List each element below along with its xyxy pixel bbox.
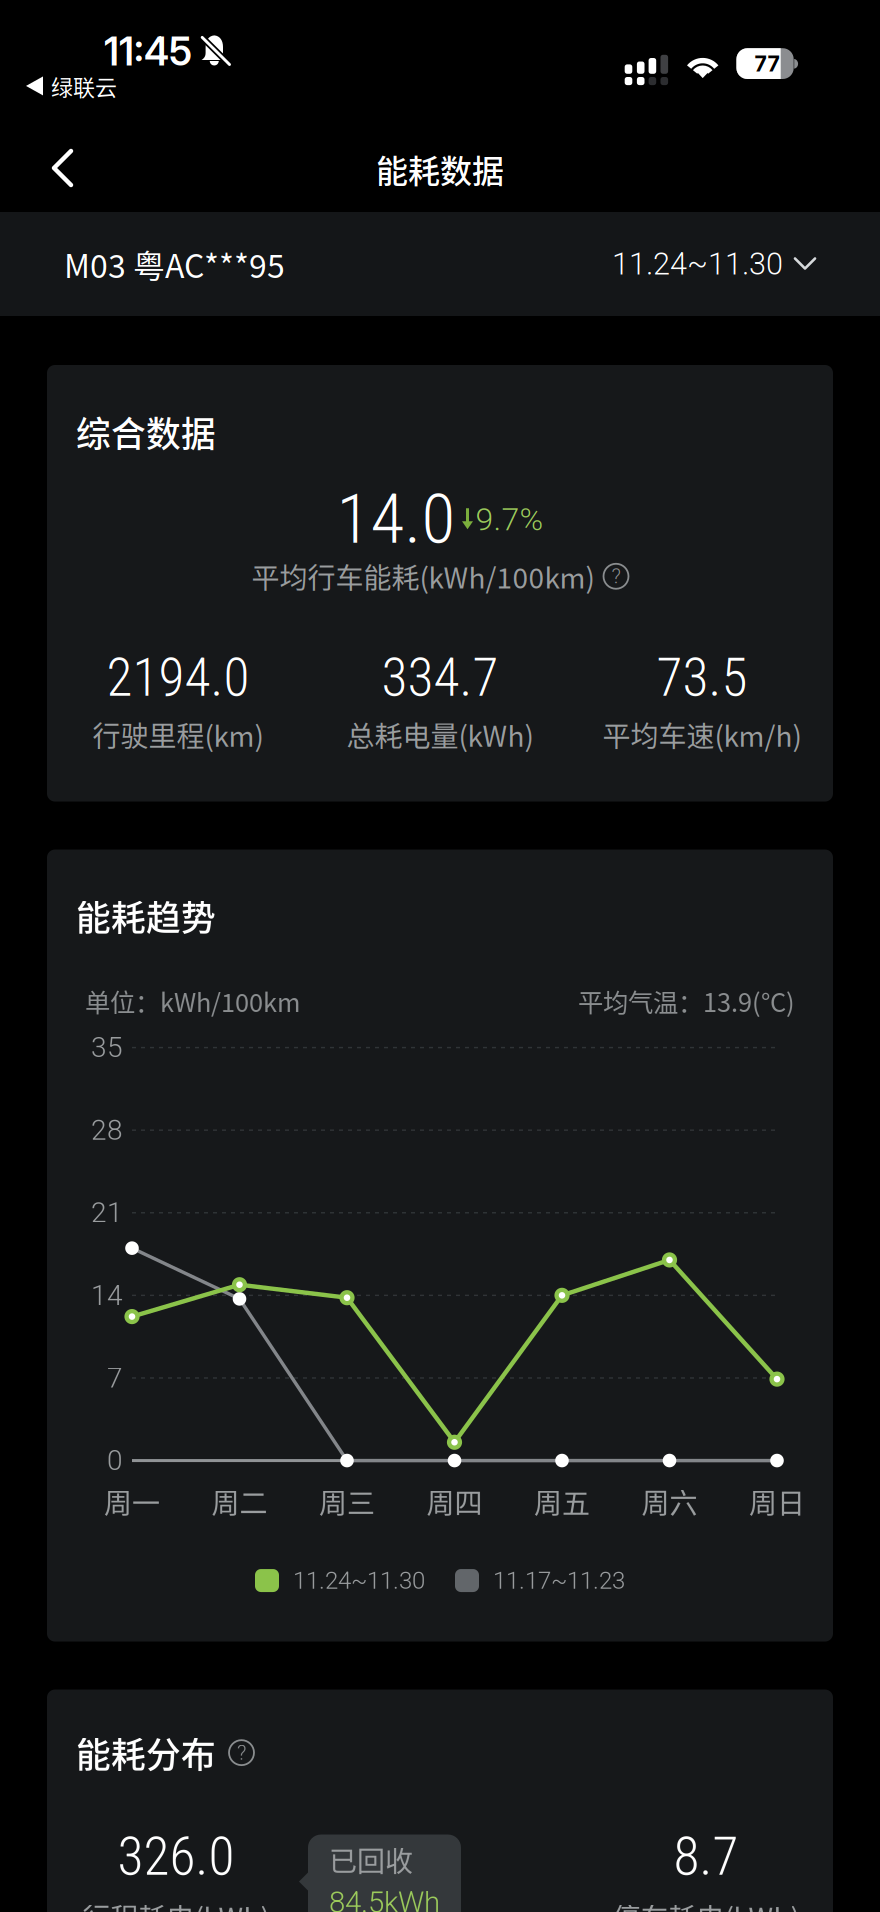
staticText: 平均车速(km/h) bbox=[602, 714, 801, 755]
staticText: 周日 bbox=[749, 1481, 805, 1522]
staticText: 11:45 bbox=[104, 28, 192, 75]
staticText: 行程耗电(kWh) bbox=[82, 1896, 269, 1912]
staticText: 周五 bbox=[534, 1481, 590, 1522]
staticText: 2194.0 bbox=[106, 646, 249, 709]
staticText: 8.7 bbox=[673, 1825, 738, 1888]
staticText: 11.24~11.30 bbox=[293, 1566, 425, 1595]
staticText: 能耗趋势 bbox=[76, 890, 216, 941]
staticText: 平均气温：13.9(°C) bbox=[578, 982, 795, 1019]
staticText: 334.7 bbox=[381, 646, 498, 709]
staticText: 7 bbox=[107, 1361, 123, 1394]
staticText: 9.7% bbox=[475, 500, 543, 538]
staticText: 单位：kWh/100km bbox=[85, 982, 300, 1019]
staticText: 77 bbox=[754, 51, 779, 77]
staticText: 73.5 bbox=[656, 646, 747, 709]
staticText: 周二 bbox=[211, 1481, 267, 1522]
staticText: 326.0 bbox=[117, 1825, 234, 1888]
staticText: 周六 bbox=[641, 1481, 697, 1522]
staticText: M03 粤AC***95 bbox=[64, 241, 285, 287]
staticText: 14 bbox=[91, 1279, 123, 1312]
button[interactable]: 返回 bbox=[22, 124, 103, 212]
staticText: 28 bbox=[91, 1114, 123, 1146]
button[interactable]: 绿联云 bbox=[20, 66, 123, 106]
staticText: 11.17~11.23 bbox=[493, 1566, 625, 1595]
staticText: 总耗电量(kWh) bbox=[346, 714, 533, 755]
button[interactable]: 11.24~11.30 bbox=[612, 226, 816, 302]
staticText: 已回收 bbox=[329, 1839, 413, 1880]
staticText: 停车耗电(kWh) bbox=[612, 1896, 799, 1912]
staticText: 能耗数据 bbox=[376, 146, 504, 192]
staticText: 综合数据 bbox=[76, 407, 216, 457]
staticText: 周四 bbox=[426, 1481, 482, 1522]
staticText: 周三 bbox=[319, 1481, 375, 1522]
staticText: 绿联云 bbox=[51, 70, 117, 102]
staticText: 11.24~11.30 bbox=[612, 246, 783, 282]
staticText: 21 bbox=[91, 1196, 123, 1229]
staticText: 周一 bbox=[104, 1481, 160, 1522]
staticText: 35 bbox=[91, 1031, 123, 1064]
staticText: ? bbox=[237, 1740, 246, 1765]
staticText: 14.0 bbox=[336, 478, 455, 560]
staticText: 行驶里程(km) bbox=[92, 714, 263, 755]
staticText: 平均行车能耗(kWh/100km) bbox=[251, 556, 594, 596]
staticText: 84.5kWh bbox=[329, 1885, 440, 1912]
staticText: 0 bbox=[107, 1444, 123, 1477]
staticText: 能耗分布 bbox=[76, 1727, 216, 1778]
staticText: ? bbox=[611, 564, 620, 588]
